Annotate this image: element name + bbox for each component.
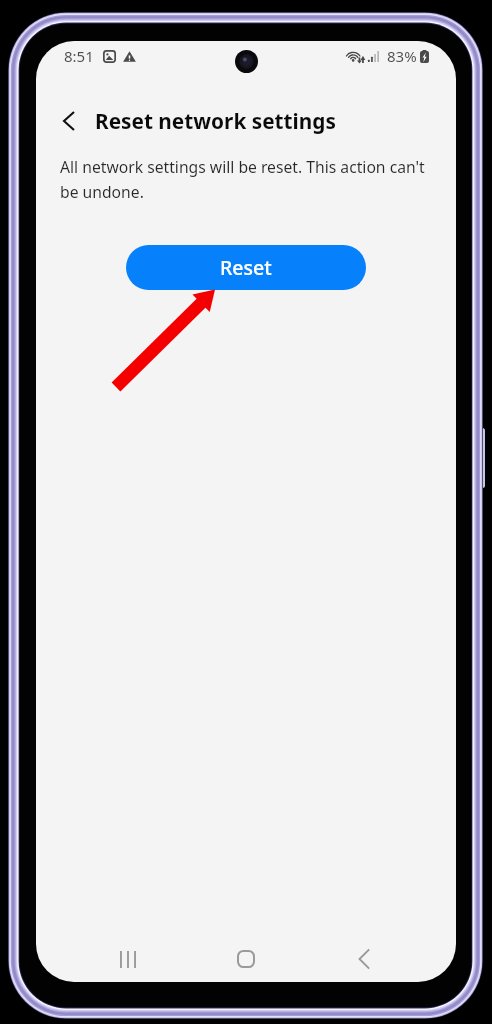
staticText: 83% bbox=[387, 46, 417, 66]
staticText: 8:51 bbox=[64, 46, 94, 66]
button[interactable]: Back bbox=[46, 99, 90, 143]
staticText: All network settings will be reset. This… bbox=[60, 156, 440, 202]
button[interactable]: Recents bbox=[97, 934, 159, 982]
staticText: Reset network settings bbox=[95, 107, 336, 135]
button[interactable]: Back bbox=[333, 934, 395, 982]
staticText: Reset bbox=[220, 254, 272, 281]
button[interactable]: Reset bbox=[126, 245, 366, 290]
button[interactable]: Home bbox=[215, 934, 277, 982]
